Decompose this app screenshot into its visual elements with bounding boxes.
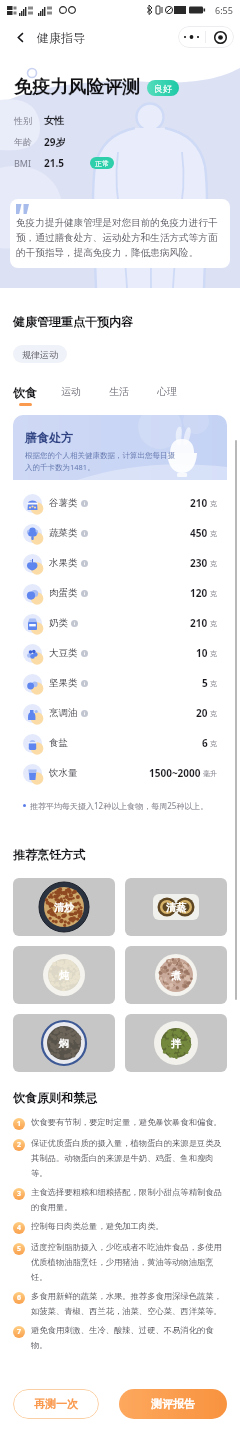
staticText: 毫升 — [203, 769, 217, 778]
button[interactable]: 大豆类 — [23, 638, 217, 668]
staticText: 450 — [190, 526, 208, 540]
staticText: 免疫力风险评测 — [14, 76, 140, 99]
staticText: 5 — [17, 1244, 22, 1254]
button[interactable]: Back — [8, 25, 32, 49]
staticText: 谷薯类 — [49, 497, 78, 509]
button[interactable]: Close — [206, 26, 234, 48]
staticText: 29岁 — [44, 135, 66, 149]
staticText: 多食用新鲜的蔬菜，水果。推荐多食用深绿色蔬菜，如菠菜、青椒、西兰花，油菜、空心菜… — [31, 1291, 227, 1317]
staticText: 膳食处方 — [25, 430, 73, 445]
button[interactable]: 坚果类 — [23, 668, 217, 698]
staticText: 炖 — [59, 969, 69, 982]
button[interactable]: 清炒 — [13, 878, 115, 936]
button[interactable]: 饮水量 — [23, 758, 217, 788]
staticText: 拌 — [171, 1037, 181, 1050]
staticText: 良好 — [154, 83, 172, 94]
button[interactable]: 烹调油 — [23, 698, 217, 728]
staticText: 心理 — [157, 385, 177, 398]
staticText: 推荐烹饪方式 — [13, 847, 85, 862]
staticText: 饮食 — [13, 385, 37, 400]
staticText: 适度控制脂肪摄入，少吃或者不吃油炸食品，多使用优质植物油脂烹饪，少用猪油，黄油等… — [31, 1242, 227, 1283]
button[interactable]: 谷薯类 — [23, 488, 217, 518]
staticText: 清蒸 — [166, 901, 186, 914]
button[interactable]: 奶类 — [23, 608, 217, 638]
button[interactable]: 拌 — [125, 1014, 227, 1072]
button[interactable]: 炖 — [13, 946, 115, 1004]
staticText: 克 — [210, 589, 217, 598]
staticText: 规律运动 — [22, 349, 58, 360]
staticText: 6:55 — [215, 4, 233, 16]
button[interactable]: More options — [178, 26, 205, 48]
staticText: 21.5 — [44, 156, 64, 170]
staticText: 根据您的个人相关健康数据，计算出您每日摄 入的千卡数为1481。 — [25, 451, 175, 473]
staticText: 免疫力提升健康管理是对您目前的免疫力进行干预，通过膳食处方、运动处方和生活方式等… — [16, 217, 222, 259]
button[interactable]: 测评报告 — [119, 1389, 227, 1419]
staticText: 克 — [210, 649, 217, 658]
staticText: 生活 — [109, 385, 129, 398]
staticText: 奶类 — [49, 617, 68, 629]
button[interactable]: 水果类 — [23, 548, 217, 578]
staticText: 蔬菜类 — [49, 527, 78, 539]
staticText: 3 — [17, 1189, 22, 1199]
button[interactable]: 再测一次 — [13, 1389, 99, 1419]
button[interactable]: 煮 — [125, 946, 227, 1004]
button[interactable]: 运动 — [61, 385, 109, 407]
staticText: 5 — [202, 676, 208, 690]
staticText: 克 — [210, 619, 217, 628]
staticText: 避免食用刺激、生冷、酸辣、过硬、不易消化的食物。 — [31, 1325, 227, 1351]
button[interactable]: 饮食 — [13, 385, 61, 407]
button[interactable]: 清蒸 — [125, 878, 227, 936]
staticText: 210 — [190, 496, 208, 510]
button[interactable]: 心理 — [157, 385, 205, 407]
staticText: 测评报告 — [151, 1397, 195, 1411]
button[interactable]: 焖 — [13, 1014, 115, 1072]
staticText: 健康管理重点干预内容 — [13, 314, 133, 329]
button[interactable]: 规律运动 — [13, 345, 67, 363]
staticText: 清炒 — [54, 901, 74, 914]
staticText: 正常 — [95, 159, 109, 168]
staticText: 120 — [190, 586, 208, 600]
staticText: 6 — [202, 736, 208, 750]
button[interactable]: 肉蛋类 — [23, 578, 217, 608]
staticText: 1 — [17, 1119, 22, 1129]
staticText: 10 — [196, 646, 208, 660]
staticText: 克 — [210, 529, 217, 538]
staticText: BMI — [14, 157, 32, 169]
staticText: 大豆类 — [49, 647, 78, 659]
staticText: 主食选择要粗粮和细粮搭配，限制小甜点等精制食品的食用量。 — [31, 1187, 227, 1213]
button[interactable]: 蔬菜类 — [23, 518, 217, 548]
staticText: 水果类 — [49, 557, 78, 569]
staticText: 再测一次 — [34, 1397, 78, 1411]
staticText: 克 — [210, 739, 217, 748]
staticText: 4 — [17, 1223, 22, 1233]
staticText: 1500~2000 — [149, 766, 201, 780]
staticText: 焖 — [59, 1037, 69, 1050]
staticText: 年龄 — [14, 136, 32, 147]
staticText: 肉蛋类 — [49, 587, 78, 599]
staticText: 控制每日肉类总量，避免加工肉类。 — [31, 1221, 164, 1231]
staticText: 6 — [17, 1293, 22, 1303]
staticText: 坚果类 — [49, 677, 78, 689]
staticText: 230 — [190, 556, 208, 570]
staticText: 烹调油 — [49, 707, 78, 719]
staticText: 饮食要有节制，要定时定量，避免暴饮暴食和偏食。 — [31, 1117, 222, 1127]
button[interactable]: 生活 — [109, 385, 157, 407]
staticText: 克 — [210, 559, 217, 568]
staticText: 健康指导 — [37, 30, 85, 45]
staticText: 推荐平均每天摄入12种以上食物，每周25种以上。 — [30, 800, 209, 811]
staticText: 2 — [17, 1140, 22, 1150]
button[interactable]: 食盐 — [23, 728, 217, 758]
staticText: 煮 — [171, 969, 181, 982]
staticText: 克 — [210, 679, 217, 688]
staticText: 性别 — [14, 115, 32, 126]
staticText: 7 — [17, 1327, 22, 1337]
staticText: 保证优质蛋白质的摄入量，植物蛋白的来源是豆类及其制品。动物蛋白的来源是牛奶、鸡蛋… — [31, 1138, 227, 1179]
staticText: 女性 — [44, 114, 64, 127]
staticText: 克 — [210, 499, 217, 508]
staticText: 20 — [196, 706, 208, 720]
staticText: 运动 — [61, 385, 81, 398]
staticText: 210 — [190, 616, 208, 630]
staticText: 饮水量 — [49, 767, 78, 779]
staticText: 克 — [210, 709, 217, 718]
staticText: 食盐 — [49, 737, 68, 749]
